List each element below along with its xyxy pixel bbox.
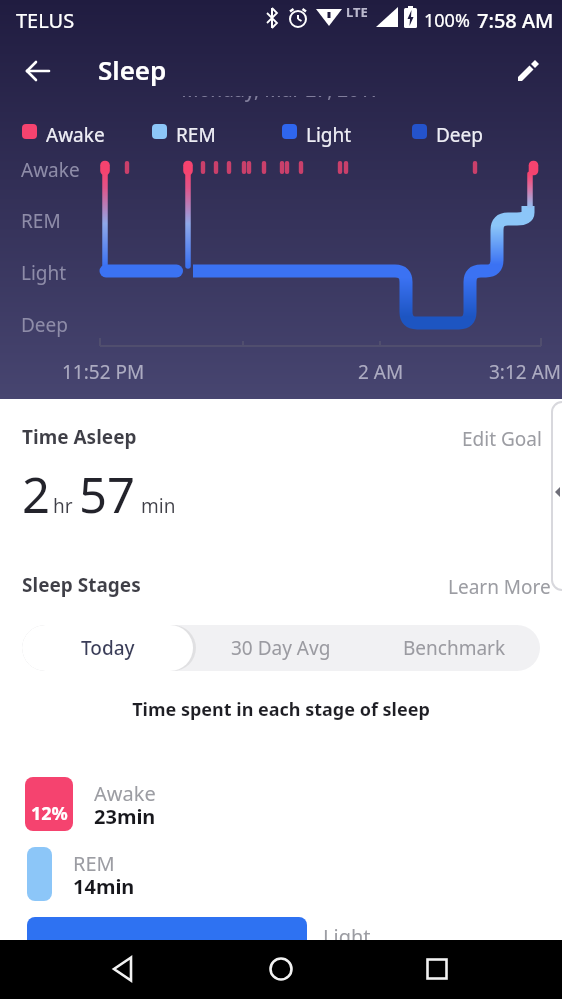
button[interactable]: Edit Goal bbox=[452, 416, 552, 462]
staticText: 14min bbox=[73, 873, 135, 900]
button[interactable] bbox=[257, 945, 305, 993]
staticText: Light bbox=[323, 923, 371, 950]
staticText: Time Asleep bbox=[22, 424, 137, 450]
staticText: Deep bbox=[21, 312, 68, 338]
staticText: 12% bbox=[31, 801, 68, 826]
staticText: Awake bbox=[46, 122, 105, 148]
button[interactable]: Today bbox=[22, 625, 193, 671]
button[interactable] bbox=[16, 49, 60, 93]
staticText: Deep bbox=[436, 122, 483, 148]
staticText: LTE bbox=[346, 3, 368, 21]
button[interactable]: 30 Day Avg bbox=[193, 625, 369, 671]
staticText: 30 Day Avg bbox=[231, 635, 331, 661]
staticText: Benchmark bbox=[403, 635, 506, 661]
staticText: Light bbox=[306, 122, 352, 148]
staticText: min bbox=[141, 493, 176, 519]
staticText: 23min bbox=[94, 803, 156, 830]
staticText: 11:52 PM bbox=[62, 359, 145, 385]
button[interactable] bbox=[506, 49, 550, 93]
button[interactable] bbox=[100, 945, 148, 993]
staticText: Time spent in each stage of sleep bbox=[0, 697, 562, 722]
staticText: 7:58 AM bbox=[477, 7, 554, 34]
button[interactable]: Benchmark bbox=[369, 625, 540, 671]
staticText: Learn More bbox=[448, 574, 551, 600]
staticText: Today bbox=[81, 635, 135, 661]
staticText: REM bbox=[21, 208, 61, 234]
staticText: 2 AM bbox=[358, 359, 404, 385]
staticText: 2 bbox=[22, 461, 51, 528]
staticText: Edit Goal bbox=[462, 426, 542, 452]
staticText: hr bbox=[53, 493, 73, 519]
staticText: REM bbox=[73, 850, 115, 877]
staticText: Sleep Stages bbox=[22, 572, 141, 598]
staticText: Awake bbox=[21, 157, 80, 183]
staticText: Monday, Mar 27, 2017 bbox=[0, 96, 562, 103]
staticText: 57 bbox=[79, 461, 136, 528]
staticText: Awake bbox=[94, 780, 156, 807]
staticText: REM bbox=[176, 122, 216, 148]
staticText: 3:12 AM bbox=[489, 359, 562, 385]
button[interactable]: Learn More bbox=[438, 564, 561, 610]
staticText: Light bbox=[21, 260, 67, 286]
button[interactable] bbox=[413, 945, 461, 993]
staticText: TELUS bbox=[16, 7, 75, 34]
staticText: 100% bbox=[424, 8, 470, 33]
staticText: Sleep bbox=[98, 52, 167, 87]
